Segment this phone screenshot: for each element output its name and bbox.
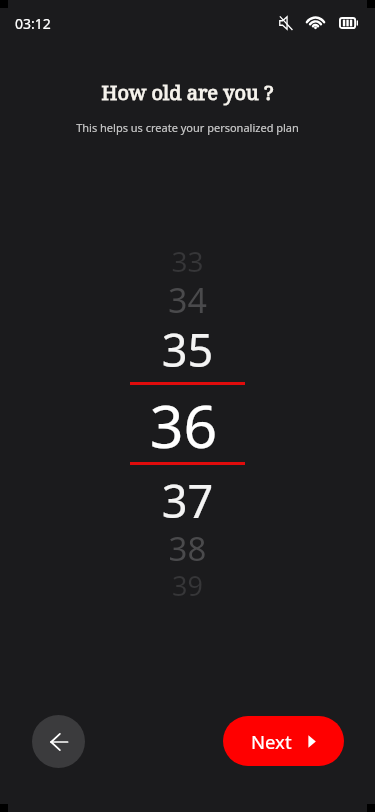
other: Battery [339,17,358,29]
staticText: How old are you ? [0,79,375,106]
other: Wi-Fi [306,16,325,30]
button[interactable]: Next [223,716,344,766]
button[interactable]: 37 [0,470,375,531]
button[interactable]: 34 [0,277,375,323]
button[interactable]: 36 [0,385,371,465]
staticText: Next [251,729,292,754]
staticText: 03:12 [15,14,51,33]
other: Sound muted [279,16,292,30]
button[interactable]: 35 [0,319,375,380]
button[interactable]: Back [32,715,85,768]
button[interactable]: 38 [0,526,375,571]
staticText: This helps us create your personalized p… [0,120,375,135]
